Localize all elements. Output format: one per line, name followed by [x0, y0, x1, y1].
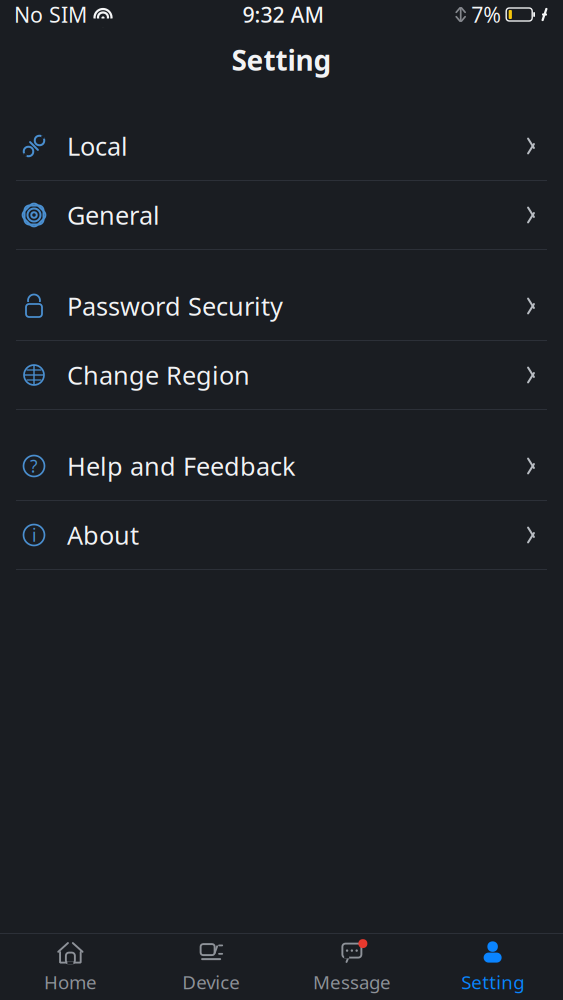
staticText: Setting: [461, 970, 524, 994]
button[interactable]: ?: [0, 432, 563, 500]
button[interactable]: Message: [281, 934, 422, 1000]
button[interactable]: Device: [141, 934, 282, 1000]
button[interactable]: Password Security: [0, 272, 563, 340]
staticText: Change Region: [67, 358, 250, 392]
staticText: Help and Feedback: [67, 449, 296, 483]
staticText: Message: [313, 970, 391, 994]
staticText: Home: [44, 970, 97, 994]
staticText: ?: [30, 454, 38, 477]
staticText: No SIM: [14, 0, 87, 29]
button[interactable]: Home: [0, 934, 141, 1000]
staticText: 9:32 AM: [243, 0, 325, 29]
staticText: Password Security: [67, 289, 283, 323]
staticText: Local: [67, 129, 128, 163]
button[interactable]: Change Region: [0, 341, 563, 409]
button[interactable]: General: [0, 181, 563, 249]
staticText: Setting: [231, 41, 331, 79]
button[interactable]: Setting: [422, 934, 563, 1000]
staticText: i: [32, 523, 36, 546]
button[interactable]: Local: [0, 112, 563, 180]
staticText: General: [67, 198, 160, 232]
button[interactable]: i: [0, 501, 563, 569]
staticText: Device: [182, 970, 240, 994]
staticText: About: [67, 518, 139, 552]
staticText: 7%: [471, 0, 501, 29]
